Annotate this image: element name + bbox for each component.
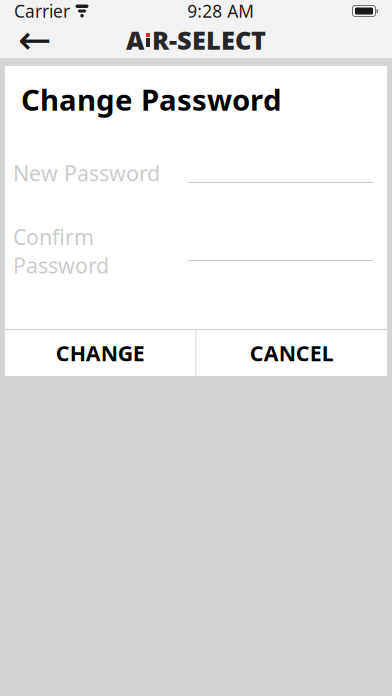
staticText: 9:28 AM xyxy=(187,0,254,22)
button[interactable]: Back xyxy=(12,22,58,58)
staticText: A xyxy=(126,23,144,57)
staticText: CHANGE xyxy=(56,339,145,367)
button[interactable]: CANCEL xyxy=(196,330,387,376)
staticText: Change Password xyxy=(21,80,282,119)
staticText: CANCEL xyxy=(250,339,334,367)
staticText: ← xyxy=(18,17,52,63)
button[interactable]: CHANGE xyxy=(5,330,195,376)
staticText: R-SELECT xyxy=(152,23,266,57)
staticText: Carrier xyxy=(14,0,70,22)
staticText: New Password xyxy=(13,159,160,187)
staticText: Confirm Password xyxy=(13,223,109,279)
